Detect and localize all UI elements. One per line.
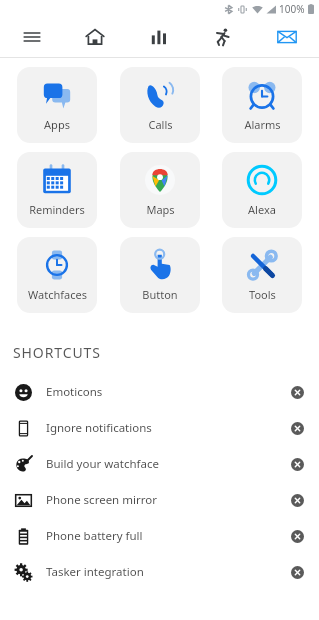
staticText: Maps bbox=[146, 202, 175, 217]
staticText: Tasker integration bbox=[46, 564, 281, 580]
button[interactable]: Remove Emoticons bbox=[281, 376, 313, 408]
button[interactable]: Watchfaces bbox=[17, 237, 97, 313]
staticText: Calls bbox=[148, 117, 173, 132]
button[interactable]: Stats bbox=[127, 17, 191, 57]
button[interactable]: Calls bbox=[120, 67, 200, 143]
staticText: Alarms bbox=[244, 117, 281, 132]
button[interactable]: Remove Build your watchface bbox=[281, 448, 313, 480]
button[interactable]: Button bbox=[120, 237, 200, 313]
staticText: Watchfaces bbox=[28, 287, 87, 302]
staticText: SHORTCUTS bbox=[13, 343, 101, 362]
button[interactable]: Tasker integration bbox=[0, 554, 319, 590]
button[interactable]: Reminders bbox=[17, 152, 97, 228]
button[interactable]: Home bbox=[63, 17, 127, 57]
button[interactable]: Alexa bbox=[222, 152, 302, 228]
button[interactable]: Remove Ignore notifications bbox=[281, 412, 313, 444]
button[interactable]: Menu bbox=[0, 17, 63, 57]
button[interactable]: Remove Phone screen mirror bbox=[281, 484, 313, 516]
staticText: Emoticons bbox=[46, 384, 281, 400]
staticText: 100% bbox=[279, 2, 305, 16]
staticText: Tools bbox=[249, 287, 276, 302]
button[interactable]: Alarms bbox=[222, 67, 302, 143]
button[interactable]: Remove Tasker integration bbox=[281, 556, 313, 588]
button[interactable]: Ignore notifications bbox=[0, 410, 319, 446]
staticText: Phone battery full bbox=[46, 528, 281, 544]
staticText: Button bbox=[142, 287, 178, 302]
button[interactable]: Phone battery full bbox=[0, 518, 319, 554]
staticText: Build your watchface bbox=[46, 456, 281, 472]
staticText: Apps bbox=[44, 117, 70, 132]
button[interactable]: Messages bbox=[255, 17, 319, 57]
button[interactable]: Phone screen mirror bbox=[0, 482, 319, 518]
button[interactable]: Build your watchface bbox=[0, 446, 319, 482]
button[interactable]: Remove Phone battery full bbox=[281, 520, 313, 552]
button[interactable]: Emoticons bbox=[0, 374, 319, 410]
button[interactable]: Tools bbox=[222, 237, 302, 313]
staticText: Alexa bbox=[248, 202, 276, 217]
staticText: Ignore notifications bbox=[46, 420, 281, 436]
button[interactable]: Apps bbox=[17, 67, 97, 143]
button[interactable]: Activity bbox=[191, 17, 255, 57]
button[interactable]: Maps bbox=[120, 152, 200, 228]
staticText: Phone screen mirror bbox=[46, 492, 281, 508]
staticText: Reminders bbox=[29, 202, 85, 217]
